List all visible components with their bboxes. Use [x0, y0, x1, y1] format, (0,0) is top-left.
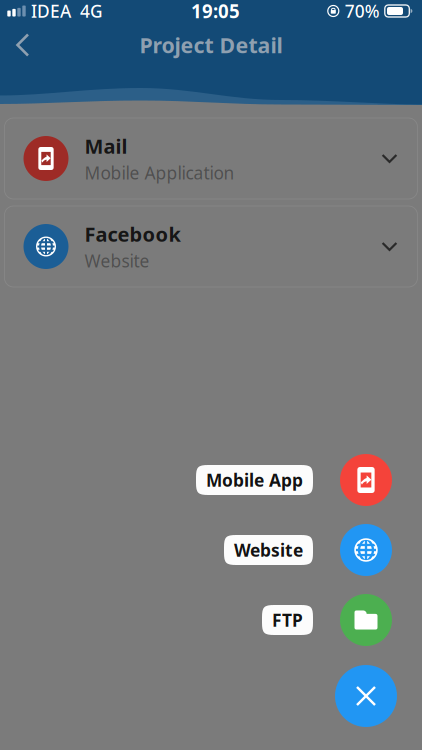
staticText: Mail — [84, 133, 127, 159]
staticText: 70% — [345, 0, 380, 22]
button[interactable]: Facebook — [4, 206, 417, 287]
staticText: Website — [234, 538, 303, 561]
button[interactable]: Mobile App — [340, 454, 392, 506]
staticText: Mobile App — [206, 468, 303, 491]
staticText: 4G — [80, 0, 103, 22]
staticText: Website — [84, 249, 149, 272]
staticText: 19:05 — [191, 0, 240, 23]
staticText: FTP — [272, 608, 303, 631]
staticText: Facebook — [84, 221, 180, 247]
button[interactable]: FTP — [262, 605, 313, 635]
button[interactable]: Close menu — [335, 665, 397, 727]
staticText: Mobile Application — [84, 161, 234, 184]
staticText: IDEA — [31, 0, 71, 22]
button[interactable]: FTP — [340, 594, 392, 646]
button[interactable]: Website — [340, 524, 392, 576]
staticText: Project Detail — [139, 31, 282, 59]
button[interactable]: Website — [224, 535, 313, 565]
button[interactable]: Mail — [4, 118, 417, 199]
button[interactable]: Back — [0, 23, 46, 67]
button[interactable]: Mobile App — [196, 465, 313, 495]
